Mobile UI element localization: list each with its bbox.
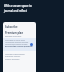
staticText: Premium plan — [5, 31, 24, 35]
button[interactable]: Cancel anytime — [5, 58, 20, 61]
staticText: Renews monthly — [5, 35, 22, 38]
button[interactable]: Encrypted cloud backup — [5, 45, 33, 48]
staticText: Unlimited private entries — [5, 41, 29, 44]
button[interactable]: Payment history — [5, 55, 21, 58]
button[interactable]: Manage subscription — [5, 53, 25, 56]
other: Plan badge — [30, 43, 33, 46]
staticText: Subscribe — [5, 25, 18, 29]
button[interactable]: Included in your plan — [3, 38, 36, 51]
staticText: Offline journaling mode — [5, 43, 28, 46]
staticText: Included in your plan — [5, 39, 25, 42]
staticText: With a secure space to journal and refle… — [4, 4, 32, 13]
